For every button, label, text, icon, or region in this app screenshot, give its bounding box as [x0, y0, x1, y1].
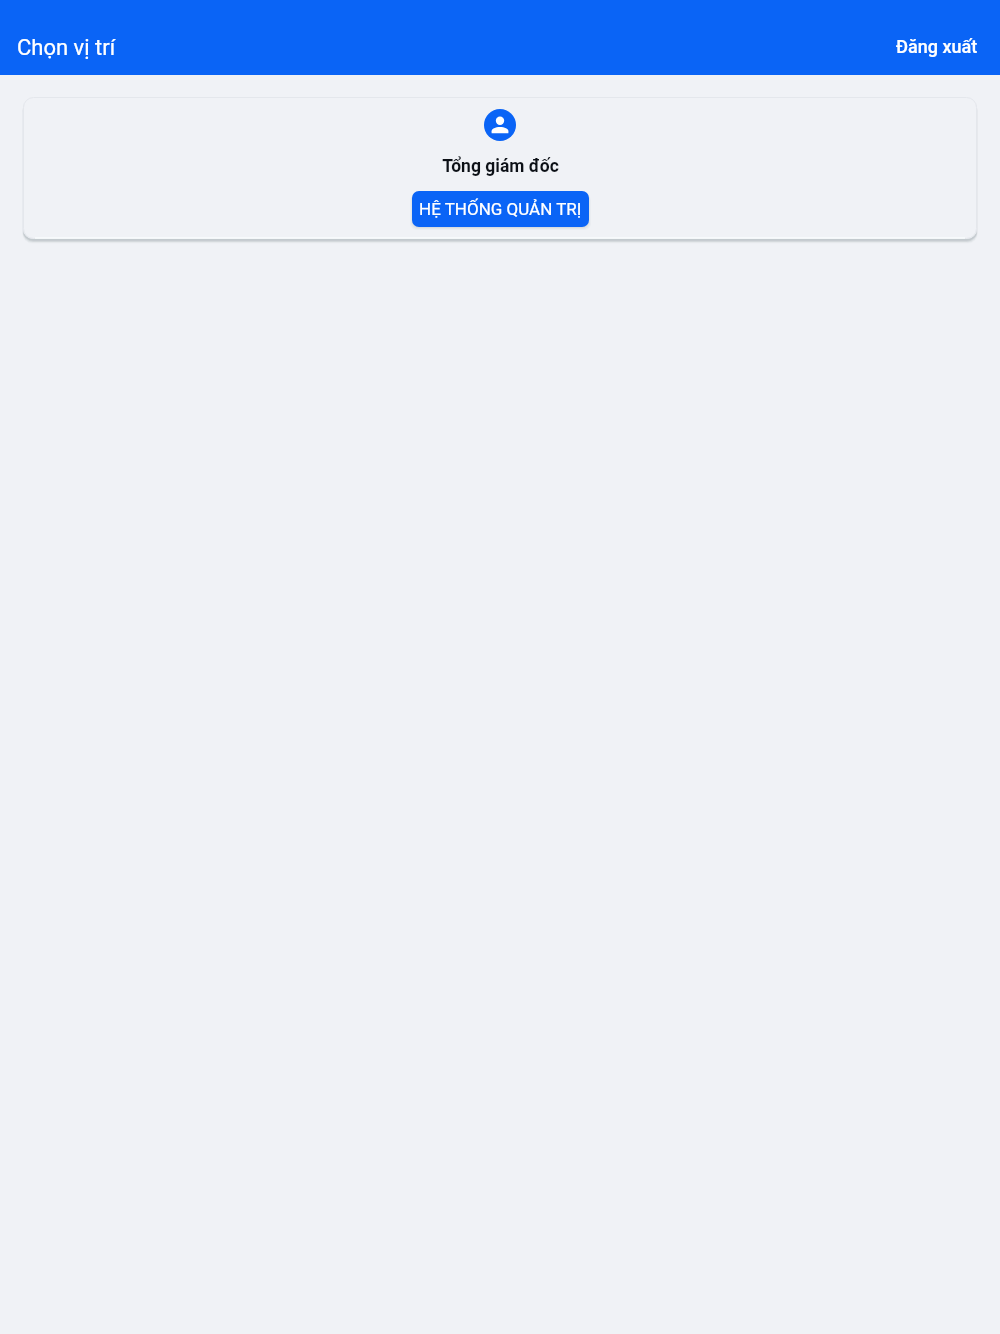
- staticText: Chọn vị trí: [17, 35, 116, 61]
- other: Ảnh đại diện: [484, 109, 516, 141]
- staticText: Đăng xuất: [896, 36, 978, 57]
- staticText: HỆ THỐNG QUẢN TRỊ: [419, 199, 582, 219]
- button[interactable]: HỆ THỐNG QUẢN TRỊ: [412, 191, 589, 227]
- button[interactable]: Đăng xuất: [872, 26, 1000, 67]
- staticText: Tổng giám đốc: [442, 156, 559, 177]
